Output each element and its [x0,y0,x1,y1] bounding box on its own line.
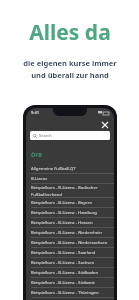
button[interactable]: Beispielkurs - B-Lizenz - Sachsen [26,258,114,268]
staticText: Beispielkurs - B-Lizenz - Südwest [31,280,95,286]
staticText: Beispielkurs - B-Lizenz - Hessen [31,220,93,226]
staticText: Alles da [29,18,111,47]
button[interactable]: Beispielkurs - B-Lizenz - Niedersachsen [26,238,114,248]
button[interactable]: Beispielkurs - B-Lizenz - Thüringen [26,288,114,298]
button[interactable]: Beispielkurs - B-Lizenz - Badischer Fußb… [26,184,114,198]
button[interactable]: Beispielkurs - B-Lizenz - Hamburg [26,208,114,218]
staticText: Beispielkurs - B-Lizenz - Sachsen [31,260,95,266]
staticText: Beispielkurs - B-Lizenz - Bayern [31,200,92,206]
button[interactable]: Beispielkurs - B-Lizenz - Saarland [26,248,114,258]
staticText: und überall zur hand [31,70,109,80]
staticText: Beispielkurs - B-Lizenz - Thüringen [31,290,99,296]
staticText: Allgemeine Fußball-QT [31,166,76,172]
button[interactable]: B-Lizenz [26,174,114,184]
staticText: Beispielkurs - B-Lizenz - Südbaden [31,270,99,276]
button[interactable]: Beispielkurs - B-Lizenz - Niederrhein [26,228,114,238]
staticText: 9:41 [31,110,39,115]
staticText: ÖFB [31,151,43,158]
staticText: Beispielkurs - B-Lizenz - Niedersachsen [31,240,108,246]
staticText: die eigenen kurse immer [23,58,117,68]
staticText: Beispielkurs - B-Lizenz - Badischer Fußb… [31,185,110,197]
button[interactable]: Beispielkurs - B-Lizenz - Südbaden [26,268,114,278]
button[interactable]: Allgemeine Fußball-QT [26,164,114,174]
button[interactable]: Search [30,131,110,140]
staticText: Beispielkurs - B-Lizenz - Saarland [31,250,96,256]
button[interactable]: Beispielkurs - B-Lizenz - Südwest [26,278,114,288]
button[interactable]: Beispielkurs - B-Lizenz - Hessen [26,218,114,228]
staticText: B-Lizenz [31,176,48,182]
staticText: Search [39,133,52,138]
staticText: Beispielkurs - B-Lizenz - Niederrhein [31,230,102,236]
button[interactable]: Beispielkurs - B-Lizenz - Bayern [26,198,114,208]
staticText: Beispielkurs - B-Lizenz - Hamburg [31,210,97,216]
button[interactable]: Close [100,120,109,129]
